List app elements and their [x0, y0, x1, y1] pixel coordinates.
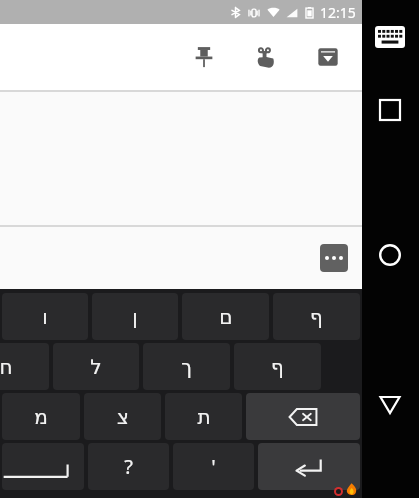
staticText: ח: [0, 355, 13, 378]
button[interactable]: ח: [0, 343, 49, 390]
button[interactable]: צ: [84, 393, 161, 440]
button[interactable]: ף: [273, 293, 360, 340]
staticText: צ: [117, 405, 129, 428]
staticText: ו: [42, 305, 48, 328]
staticText: ': [211, 453, 216, 480]
button[interactable]: מ: [2, 393, 80, 440]
staticText: ף: [310, 305, 323, 328]
staticText: 12:15: [320, 3, 356, 22]
button[interactable]: Recents: [370, 90, 410, 130]
button[interactable]: ו: [2, 293, 88, 340]
staticText: ם: [219, 305, 233, 328]
staticText: ן: [132, 305, 138, 328]
button[interactable]: Archive: [304, 33, 352, 81]
button[interactable]: Home: [370, 235, 410, 275]
button[interactable]: Space: [2, 443, 84, 490]
button[interactable]: More options: [320, 244, 348, 272]
staticText: ף: [271, 355, 284, 378]
staticText: ת: [197, 405, 211, 428]
button[interactable]: Enter: [258, 443, 360, 490]
button[interactable]: ת: [165, 393, 242, 440]
button[interactable]: ?: [88, 443, 169, 490]
button[interactable]: Pin: [180, 33, 228, 81]
button[interactable]: Show keyboard: [374, 24, 406, 50]
button[interactable]: Backspace: [246, 393, 360, 440]
staticText: מ: [34, 405, 48, 428]
button[interactable]: ן: [92, 293, 178, 340]
button[interactable]: ף: [234, 343, 321, 390]
staticText: ך: [181, 355, 192, 378]
button[interactable]: Back: [370, 385, 410, 425]
button[interactable]: Reminder: [242, 33, 290, 81]
staticText: ל: [90, 355, 102, 378]
button[interactable]: ם: [182, 293, 269, 340]
button[interactable]: ל: [53, 343, 139, 390]
staticText: ?: [124, 453, 133, 480]
button[interactable]: ': [173, 443, 254, 490]
button[interactable]: ך: [143, 343, 230, 390]
